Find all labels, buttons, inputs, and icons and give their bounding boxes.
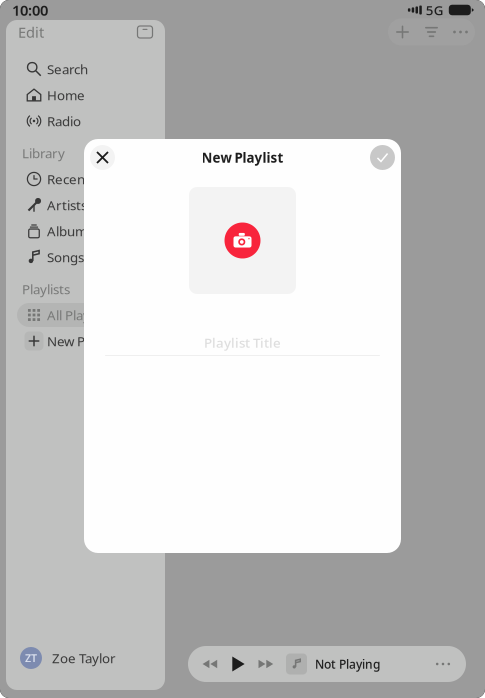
staticText: Albums — [47, 222, 93, 240]
button[interactable]: Previous — [196, 649, 224, 679]
button[interactable]: Songs — [11, 244, 160, 270]
button[interactable]: Play — [224, 649, 252, 679]
staticText: Home — [47, 86, 85, 104]
button[interactable]: Done — [370, 145, 395, 170]
button[interactable]: All Playlists — [11, 302, 160, 328]
button[interactable]: Close — [90, 145, 115, 170]
staticText: 10:00 — [12, 0, 48, 20]
button[interactable]: Search — [11, 56, 160, 82]
button[interactable]: Radio — [11, 108, 160, 134]
button[interactable]: Choose Artwork — [189, 187, 296, 294]
staticText: ZT — [25, 651, 37, 665]
staticText: New Playlist — [47, 332, 119, 350]
staticText: Radio — [47, 112, 81, 130]
staticText: Playlists — [22, 280, 70, 298]
staticText: New Playlist — [201, 149, 283, 166]
button[interactable]: Recently Added — [11, 166, 160, 192]
staticText: Zoe Taylor — [52, 649, 116, 667]
staticText: Songs — [47, 248, 84, 266]
button[interactable]: More Options — [426, 649, 460, 679]
staticText: Artists — [47, 196, 87, 214]
staticText: Not Playing — [315, 656, 380, 672]
button[interactable]: Hide Sidebar — [134, 24, 156, 40]
staticText: Library — [22, 144, 65, 162]
button[interactable]: Home — [11, 82, 160, 108]
button[interactable]: More — [446, 18, 475, 45]
button[interactable]: Artists — [11, 192, 160, 218]
staticText: Search — [47, 60, 88, 78]
staticText: Recently Added — [47, 170, 144, 188]
staticText: All Playlists — [47, 306, 113, 324]
staticText: 5G — [426, 1, 444, 19]
button[interactable]: ZT — [6, 641, 165, 675]
button[interactable]: Next — [252, 649, 280, 679]
staticText: Playlist Title — [204, 334, 281, 351]
button[interactable]: Sort — [417, 18, 446, 45]
button[interactable]: Edit — [15, 24, 47, 40]
button[interactable]: Albums — [11, 218, 160, 244]
staticText: Edit — [18, 22, 44, 42]
button[interactable]: Add — [388, 18, 417, 45]
button[interactable]: New Playlist — [11, 328, 160, 354]
